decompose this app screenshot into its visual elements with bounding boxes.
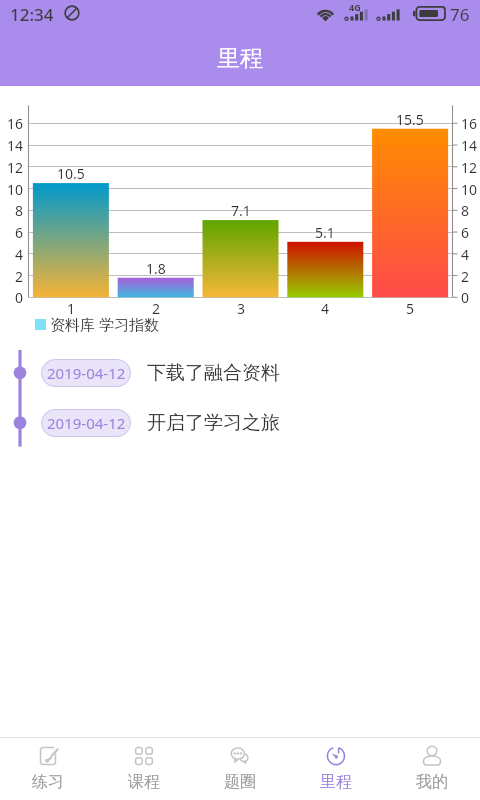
staticText: 12	[461, 158, 478, 176]
staticText: 2	[461, 267, 470, 285]
button[interactable]: 练习	[0, 738, 96, 800]
staticText: 76	[450, 3, 470, 26]
staticText: 7.1	[231, 201, 251, 219]
button[interactable]: 里程	[288, 738, 384, 800]
staticText: 6	[461, 223, 470, 241]
staticText: 2019-04-12	[47, 363, 126, 383]
staticText: 14	[7, 136, 24, 154]
staticText: 12	[7, 158, 24, 176]
staticText: 1.8	[146, 259, 166, 277]
staticText: 14	[461, 136, 478, 154]
staticText: 4G	[349, 1, 361, 13]
staticText: 8	[15, 201, 24, 219]
staticText: 0	[461, 288, 470, 306]
staticText: 4	[461, 245, 470, 263]
staticText: 5	[406, 299, 415, 317]
staticText: 2	[152, 299, 161, 317]
staticText: 5.1	[315, 223, 335, 241]
staticText: 12:34	[10, 3, 54, 26]
button[interactable]: 我的	[384, 738, 480, 800]
staticText: 课程	[128, 772, 160, 792]
staticText: 1	[67, 299, 76, 317]
staticText: 2	[15, 267, 24, 285]
staticText: 下载了融合资料	[147, 361, 280, 385]
button[interactable]: 题圈	[192, 738, 288, 800]
button[interactable]: 2019-04-12	[41, 359, 480, 387]
staticText: 开启了学习之旅	[147, 411, 280, 435]
button[interactable]: 课程	[96, 738, 192, 800]
staticText: 练习	[32, 772, 64, 792]
staticText: 2019-04-12	[47, 413, 126, 433]
staticText: 里程	[217, 44, 263, 73]
staticText: 16	[7, 114, 24, 132]
staticText: 10.5	[57, 164, 85, 182]
staticText: 10	[461, 180, 478, 198]
staticText: 16	[461, 114, 478, 132]
staticText: 里程	[320, 772, 352, 792]
staticText: 10	[7, 180, 24, 198]
staticText: 题圈	[224, 772, 256, 792]
staticText: 8	[461, 201, 470, 219]
staticText: 4	[15, 245, 24, 263]
staticText: 4	[321, 299, 330, 317]
staticText: 0	[15, 288, 24, 306]
button[interactable]: 2019-04-12	[41, 409, 480, 437]
staticText: 我的	[416, 772, 448, 792]
staticText: 3	[237, 299, 246, 317]
staticText: 15.5	[396, 110, 424, 128]
staticText: 6	[15, 223, 24, 241]
staticText: 资料库 学习指数	[50, 314, 159, 334]
